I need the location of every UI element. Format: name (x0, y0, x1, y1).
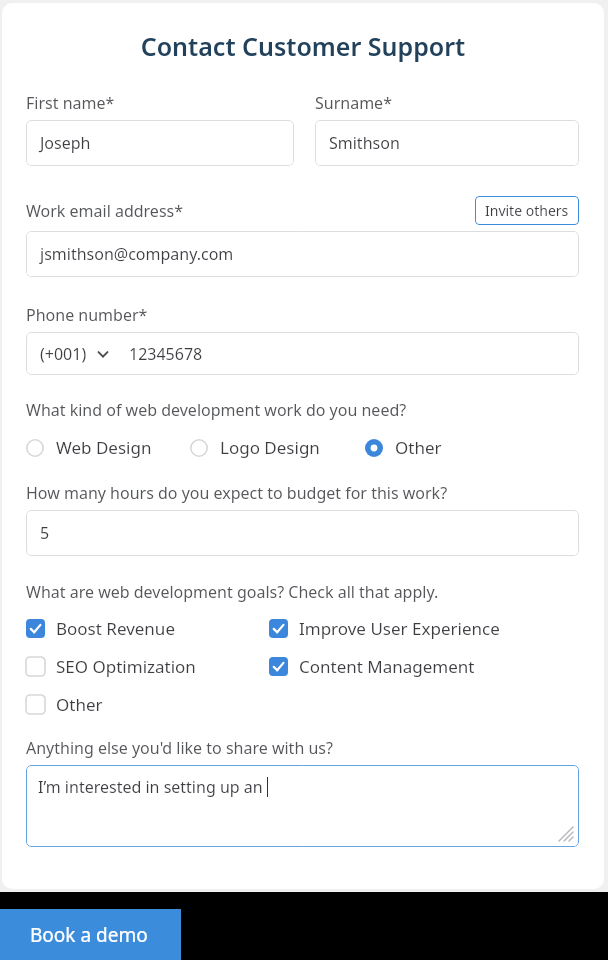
staticText: Content Management (299, 655, 475, 678)
button[interactable]: jsmithson@company.com (26, 231, 579, 277)
staticText: 5 (40, 522, 50, 544)
button[interactable]: Other (365, 436, 442, 459)
staticText: Improve User Experience (299, 617, 500, 640)
button[interactable]: 5 (26, 510, 579, 556)
staticText: Other (56, 693, 103, 716)
button[interactable]: Boost Revenue (26, 617, 269, 640)
button[interactable]: Joseph (26, 120, 294, 166)
button[interactable]: (+001) (26, 332, 579, 375)
button[interactable]: Book a demo (0, 909, 181, 960)
staticText: First name* (26, 92, 115, 114)
staticText: Anything else you'd like to share with u… (26, 737, 333, 759)
staticText: Surname* (315, 92, 392, 114)
staticText: Work email address* (26, 200, 184, 222)
button[interactable]: Logo Design (190, 436, 365, 459)
staticText: What kind of web development work do you… (26, 399, 407, 421)
staticText: 12345678 (129, 343, 203, 365)
other: Select country code (95, 346, 111, 362)
button[interactable]: I’m interested in setting up an (26, 765, 579, 847)
staticText: jsmithson@company.com (40, 243, 234, 265)
button[interactable]: Invite others (475, 196, 579, 225)
button[interactable]: SEO Optimization (26, 655, 269, 678)
staticText: Book a demo (30, 922, 148, 948)
staticText: I’m interested in setting up an (38, 776, 267, 798)
button[interactable]: Other (26, 693, 103, 716)
staticText: Joseph (40, 132, 91, 154)
button[interactable]: Content Management (269, 655, 475, 678)
staticText: Web Design (56, 436, 152, 459)
button[interactable]: Smithson (315, 120, 579, 166)
staticText: Logo Design (220, 436, 320, 459)
staticText: Phone number* (26, 304, 148, 326)
staticText: Invite others (485, 201, 569, 220)
staticText: SEO Optimization (56, 655, 196, 678)
staticText: What are web development goals? Check al… (26, 581, 439, 603)
staticText: Smithson (329, 132, 400, 154)
staticText: How many hours do you expect to budget f… (26, 482, 448, 504)
staticText: (+001) (40, 343, 87, 365)
button[interactable]: Web Design (26, 436, 190, 459)
staticText: Boost Revenue (56, 617, 175, 640)
button[interactable]: Improve User Experience (269, 617, 500, 640)
staticText: Other (395, 436, 442, 459)
staticText: Contact Customer Support (2, 29, 604, 63)
